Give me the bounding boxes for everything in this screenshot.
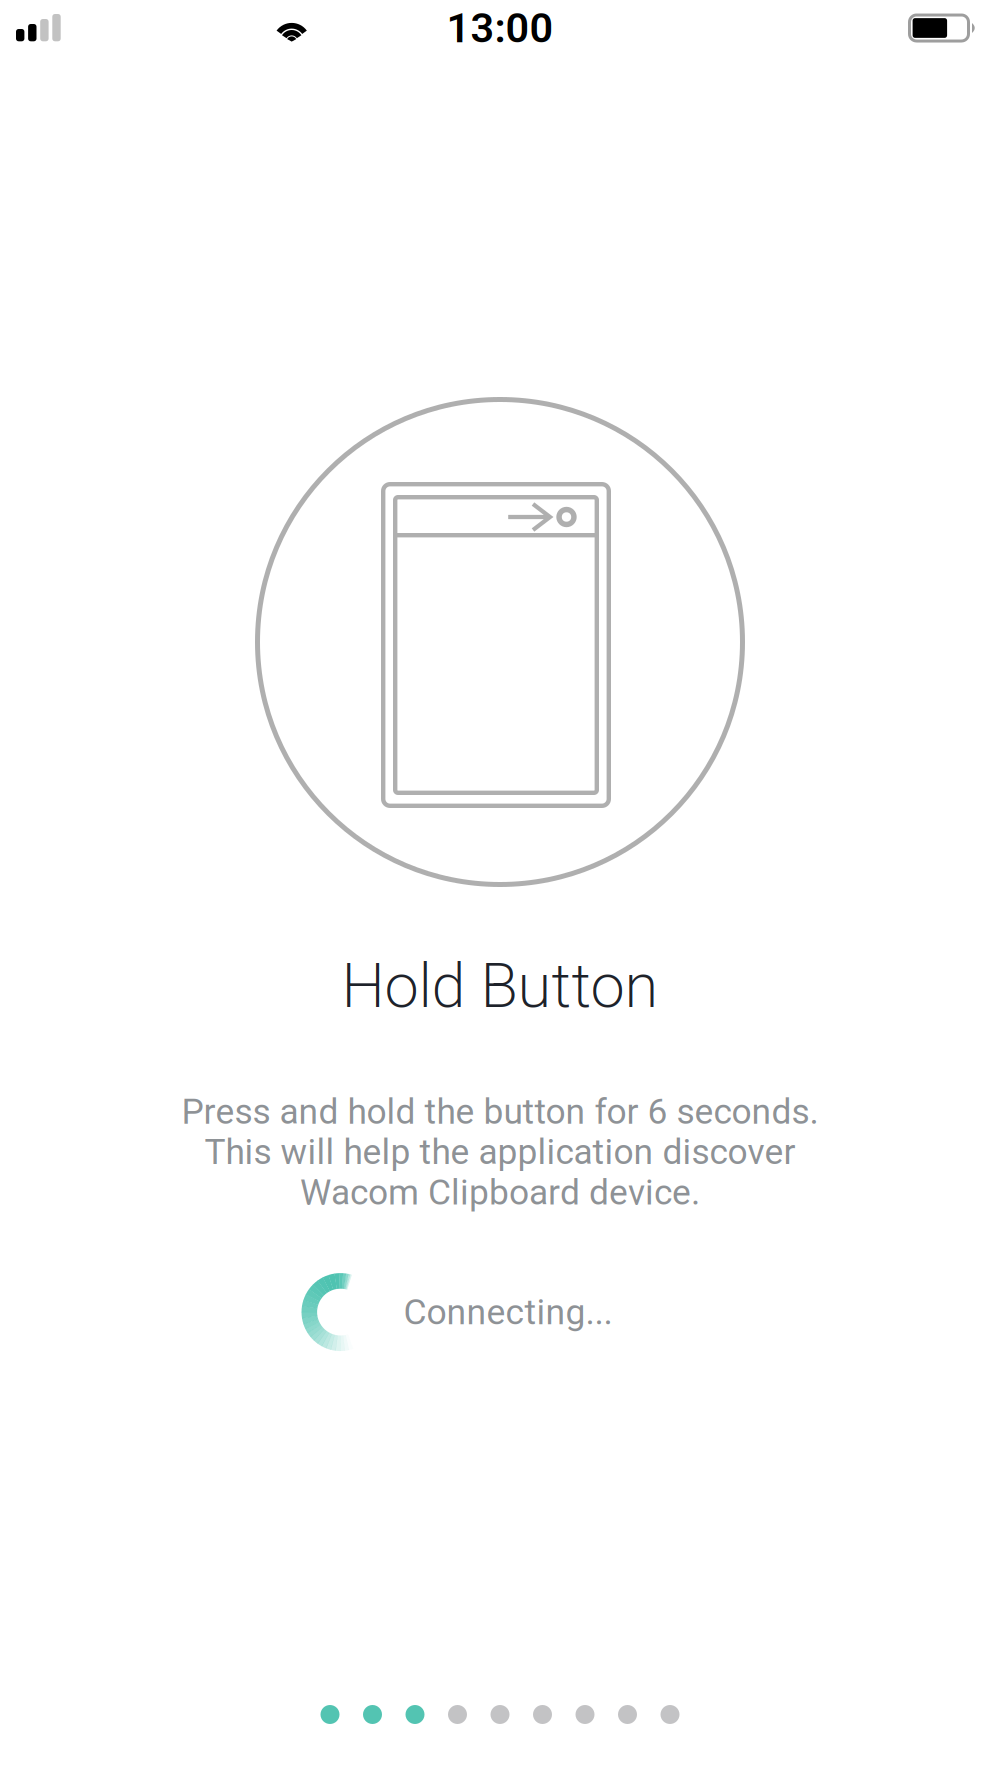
staticText: Connecting...	[403, 1291, 612, 1333]
staticText: 13:00	[446, 4, 553, 52]
staticText: This will help the application discover	[204, 1131, 795, 1173]
staticText: Press and hold the button for 6 seconds.	[181, 1091, 818, 1132]
staticText: Hold Button	[341, 950, 658, 1022]
staticText: Wacom Clipboard device.	[300, 1172, 700, 1213]
